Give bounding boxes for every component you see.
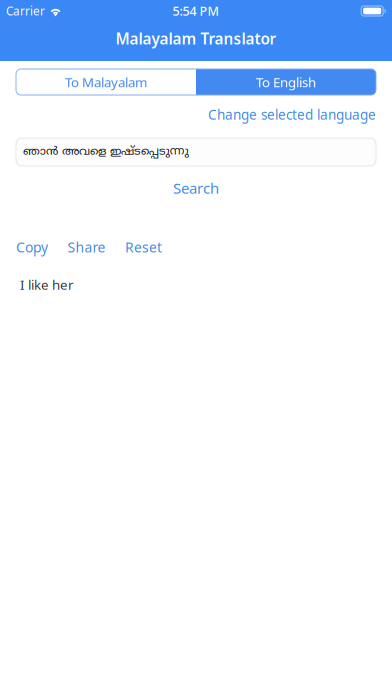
staticText: Reset: [125, 238, 162, 256]
staticText: ഞാൻ അവളെ ഇഷ്ടപ്പെടുന്നു: [23, 145, 189, 159]
staticText: 5:54 PM: [172, 2, 219, 20]
staticText: Malayalam Translator: [115, 28, 276, 49]
button[interactable]: Reset: [125, 239, 162, 255]
button[interactable]: To Malayalam: [16, 69, 196, 95]
staticText: To Malayalam: [65, 73, 147, 91]
staticText: Carrier: [6, 3, 45, 19]
staticText: I like her: [20, 275, 74, 294]
button[interactable]: Change selected language: [208, 106, 376, 123]
button[interactable]: Search: [0, 178, 392, 198]
staticText: Change selected language: [208, 105, 376, 124]
button[interactable]: Share: [67, 239, 105, 255]
staticText: Search: [173, 178, 219, 198]
staticText: Copy: [16, 238, 48, 256]
button[interactable]: Copy: [16, 239, 48, 255]
staticText: To English: [256, 73, 316, 91]
button[interactable]: To English: [196, 69, 376, 95]
staticText: Share: [67, 238, 105, 256]
